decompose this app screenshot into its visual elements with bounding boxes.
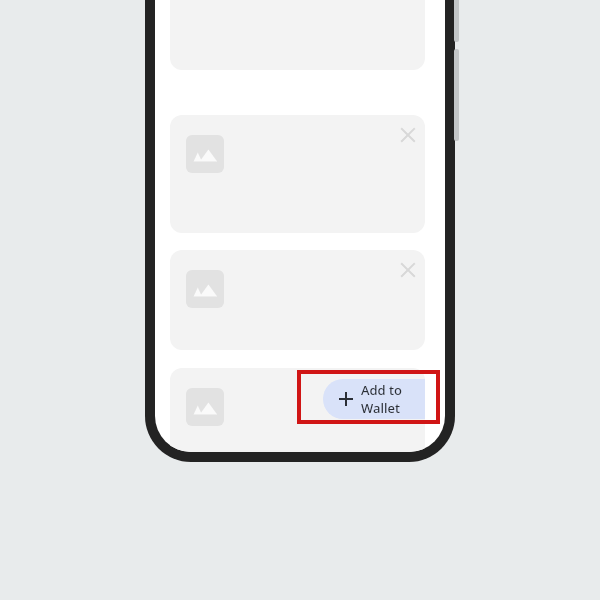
button[interactable]: Add to Wallet [323,379,425,419]
button[interactable]: Dismiss [170,250,425,350]
staticText: Add to Wallet [361,381,425,417]
button[interactable]: Dismiss [170,115,425,233]
button[interactable]: Dismiss [394,121,422,149]
button[interactable]: Dismiss [394,256,422,284]
button[interactable]: Add to Wallet [170,368,425,452]
